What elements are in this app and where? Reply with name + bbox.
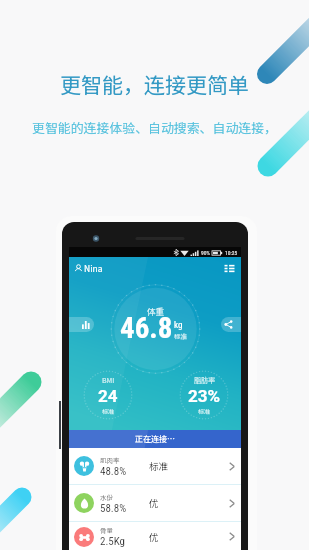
staticText: BMI [102, 375, 115, 385]
staticText: 优 [149, 496, 159, 510]
staticText: 更智能，连接更简单 [0, 69, 309, 99]
button[interactable]: Menu [224, 263, 235, 274]
staticText: 骨量 [100, 525, 113, 534]
staticText: 优 [149, 530, 159, 544]
staticText: 90% [201, 250, 210, 256]
staticText: 48.8% [100, 465, 127, 478]
button[interactable]: 正在连接… [69, 430, 241, 448]
staticText: 46.8 [120, 311, 173, 345]
staticText: 2.5Kg [100, 535, 126, 548]
staticText: 标准 [174, 331, 187, 340]
staticText: 24 [98, 386, 118, 406]
button[interactable]: 肌肉率 [69, 448, 241, 484]
staticText: 标准 [102, 407, 115, 416]
staticText: kg [174, 320, 183, 331]
staticText: 体重 [147, 305, 165, 317]
staticText: 肌肉率 [100, 455, 120, 464]
button[interactable]: 骨量 [69, 522, 241, 550]
staticText: 标准 [198, 407, 211, 416]
button[interactable]: Share [221, 317, 241, 332]
staticText: 23% [188, 386, 221, 406]
button[interactable]: Statistics [69, 317, 94, 332]
staticText: 水份 [100, 492, 113, 501]
staticText: 脂肪率 [194, 375, 215, 385]
staticText: 更智能的连接体验、自动搜索、自动连接， [0, 118, 309, 137]
staticText: 标准 [149, 459, 169, 473]
button[interactable]: Nina [74, 262, 103, 274]
staticText: 58.8% [100, 502, 127, 515]
staticText: Nina [84, 262, 103, 274]
button[interactable]: 水份 [69, 485, 241, 521]
staticText: 正在连接… [135, 433, 175, 445]
staticText: 10:25 [225, 250, 238, 256]
